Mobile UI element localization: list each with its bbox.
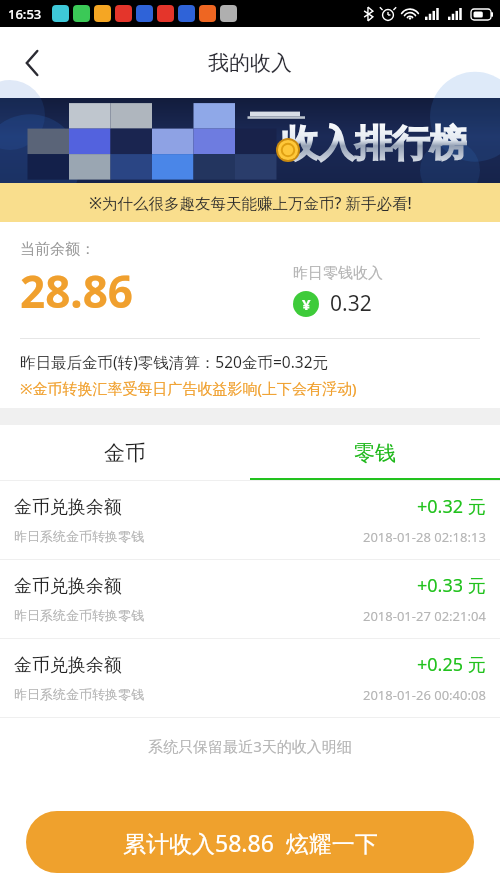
button[interactable]: 零钱: [250, 425, 500, 481]
staticText: 我的收入: [208, 50, 292, 76]
staticText: 昨日最后金币(转)零钱清算：520金币=0.32元: [20, 351, 329, 372]
staticText: +0.25 元: [417, 652, 486, 677]
staticText: 当前余额：: [20, 240, 95, 259]
button[interactable]: 累计收入58.86 炫耀一下: [26, 811, 474, 873]
button[interactable]: Back: [8, 39, 56, 87]
staticText: 0.32: [330, 289, 372, 318]
staticText: 昨日系统金币转换零钱: [14, 686, 144, 702]
staticText: 金币兑换余额: [14, 496, 122, 519]
staticText: 累计收入58.86 炫耀一下: [123, 827, 378, 858]
button[interactable]: 金币兑换余额: [0, 639, 500, 718]
staticText: 2018-01-28 02:18:13: [363, 528, 486, 546]
staticText: 28.86: [20, 261, 134, 321]
staticText: 收入排行榜: [281, 120, 466, 167]
staticText: 金币: [104, 440, 146, 466]
staticText: 昨日零钱收入: [293, 264, 383, 283]
button[interactable]: ※为什么很多趣友每天能赚上万金币? 新手必看!: [0, 183, 500, 222]
staticText: ¥: [302, 294, 311, 314]
button[interactable]: 金币兑换余额: [0, 560, 500, 639]
staticText: 金币兑换余额: [14, 654, 122, 677]
staticText: +0.32 元: [417, 494, 486, 519]
staticText: 系统只保留最近3天的收入明细: [0, 736, 500, 756]
staticText: 2018-01-26 00:40:08: [363, 686, 486, 704]
staticText: ※金币转换汇率受每日广告收益影响(上下会有浮动): [20, 378, 357, 398]
staticText: 昨日系统金币转换零钱: [14, 528, 144, 544]
staticText: 2018-01-27 02:21:04: [363, 607, 486, 625]
staticText: 金币兑换余额: [14, 575, 122, 598]
button[interactable]: 金币兑换余额: [0, 481, 500, 560]
staticText: 昨日系统金币转换零钱: [14, 607, 144, 623]
staticText: ※为什么很多趣友每天能赚上万金币? 新手必看!: [89, 192, 412, 213]
button[interactable]: 金币: [0, 425, 250, 481]
staticText: +0.33 元: [417, 573, 486, 598]
staticText: 零钱: [354, 440, 396, 466]
staticText: 16:53: [8, 5, 42, 23]
